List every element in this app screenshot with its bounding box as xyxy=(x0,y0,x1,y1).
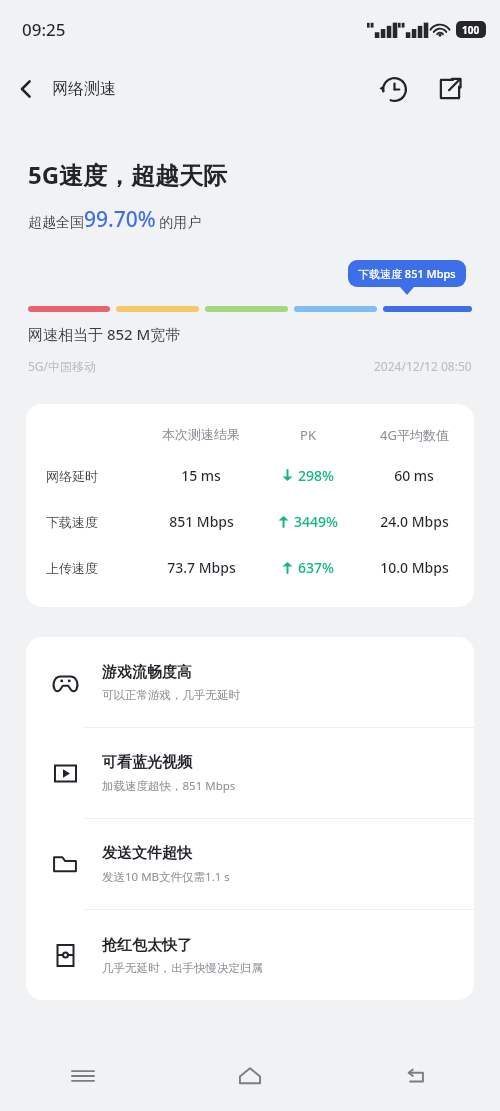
staticText: 5G速度，超越天际 xyxy=(28,158,228,191)
staticText: 3449% xyxy=(294,512,338,531)
staticText: 24.0 Mbps xyxy=(380,512,449,531)
staticText: 下载速度 851 Mbps xyxy=(358,266,456,281)
button[interactable]: Recents xyxy=(0,1041,166,1111)
button[interactable]: Home xyxy=(166,1041,333,1111)
staticText: 加载速度超快，851 Mbps xyxy=(102,778,236,794)
staticText: 抢红包太快了 xyxy=(102,936,192,955)
staticText: 5G/中国移动 xyxy=(28,358,97,374)
staticText: 下载速度 xyxy=(46,514,98,530)
staticText: 15 ms xyxy=(181,466,221,485)
staticText: 298% xyxy=(298,466,334,485)
staticText: 2024/12/12 08:50 xyxy=(374,358,472,374)
button[interactable]: 发送文件超快 xyxy=(26,819,474,910)
staticText: 本次测速结果 xyxy=(162,426,240,442)
staticText: 73.7 Mbps xyxy=(167,558,236,577)
staticText: 游戏流畅度高 xyxy=(102,663,192,682)
button[interactable]: 游戏流畅度高 xyxy=(26,637,474,728)
staticText: 上传速度 xyxy=(46,560,98,576)
staticText: 851 Mbps xyxy=(169,512,234,531)
button[interactable]: 抢红包太快了 xyxy=(26,910,474,1000)
button[interactable]: Share xyxy=(428,67,472,111)
staticText: 超越全国99.70% 的用户 xyxy=(28,205,202,234)
button[interactable]: History xyxy=(372,67,416,111)
button[interactable]: 本次测速结果 xyxy=(26,404,474,607)
staticText: 可以正常游戏，几乎无延时 xyxy=(102,688,240,702)
staticText: 09:25 xyxy=(22,18,66,41)
button[interactable]: Back xyxy=(333,1041,500,1111)
button[interactable]: 可看蓝光视频 xyxy=(26,728,474,819)
staticText: 网络测速 xyxy=(52,79,116,99)
staticText: 637% xyxy=(298,558,334,577)
staticText: 发送10 MB文件仅需1.1 s xyxy=(102,869,230,885)
button[interactable]: Back xyxy=(0,63,52,115)
staticText: 100 xyxy=(462,23,480,37)
staticText: PK xyxy=(300,426,316,444)
staticText: 可看蓝光视频 xyxy=(102,753,192,772)
staticText: 网速相当于 852 M宽带 xyxy=(28,324,181,344)
staticText: 几乎无延时，出手快慢决定归属 xyxy=(102,961,263,975)
staticText: 发送文件超快 xyxy=(102,844,192,863)
staticText: 4G平均数值 xyxy=(380,426,449,444)
staticText: 网络延时 xyxy=(46,468,98,484)
staticText: 60 ms xyxy=(394,466,434,485)
staticText: 10.0 Mbps xyxy=(380,558,449,577)
